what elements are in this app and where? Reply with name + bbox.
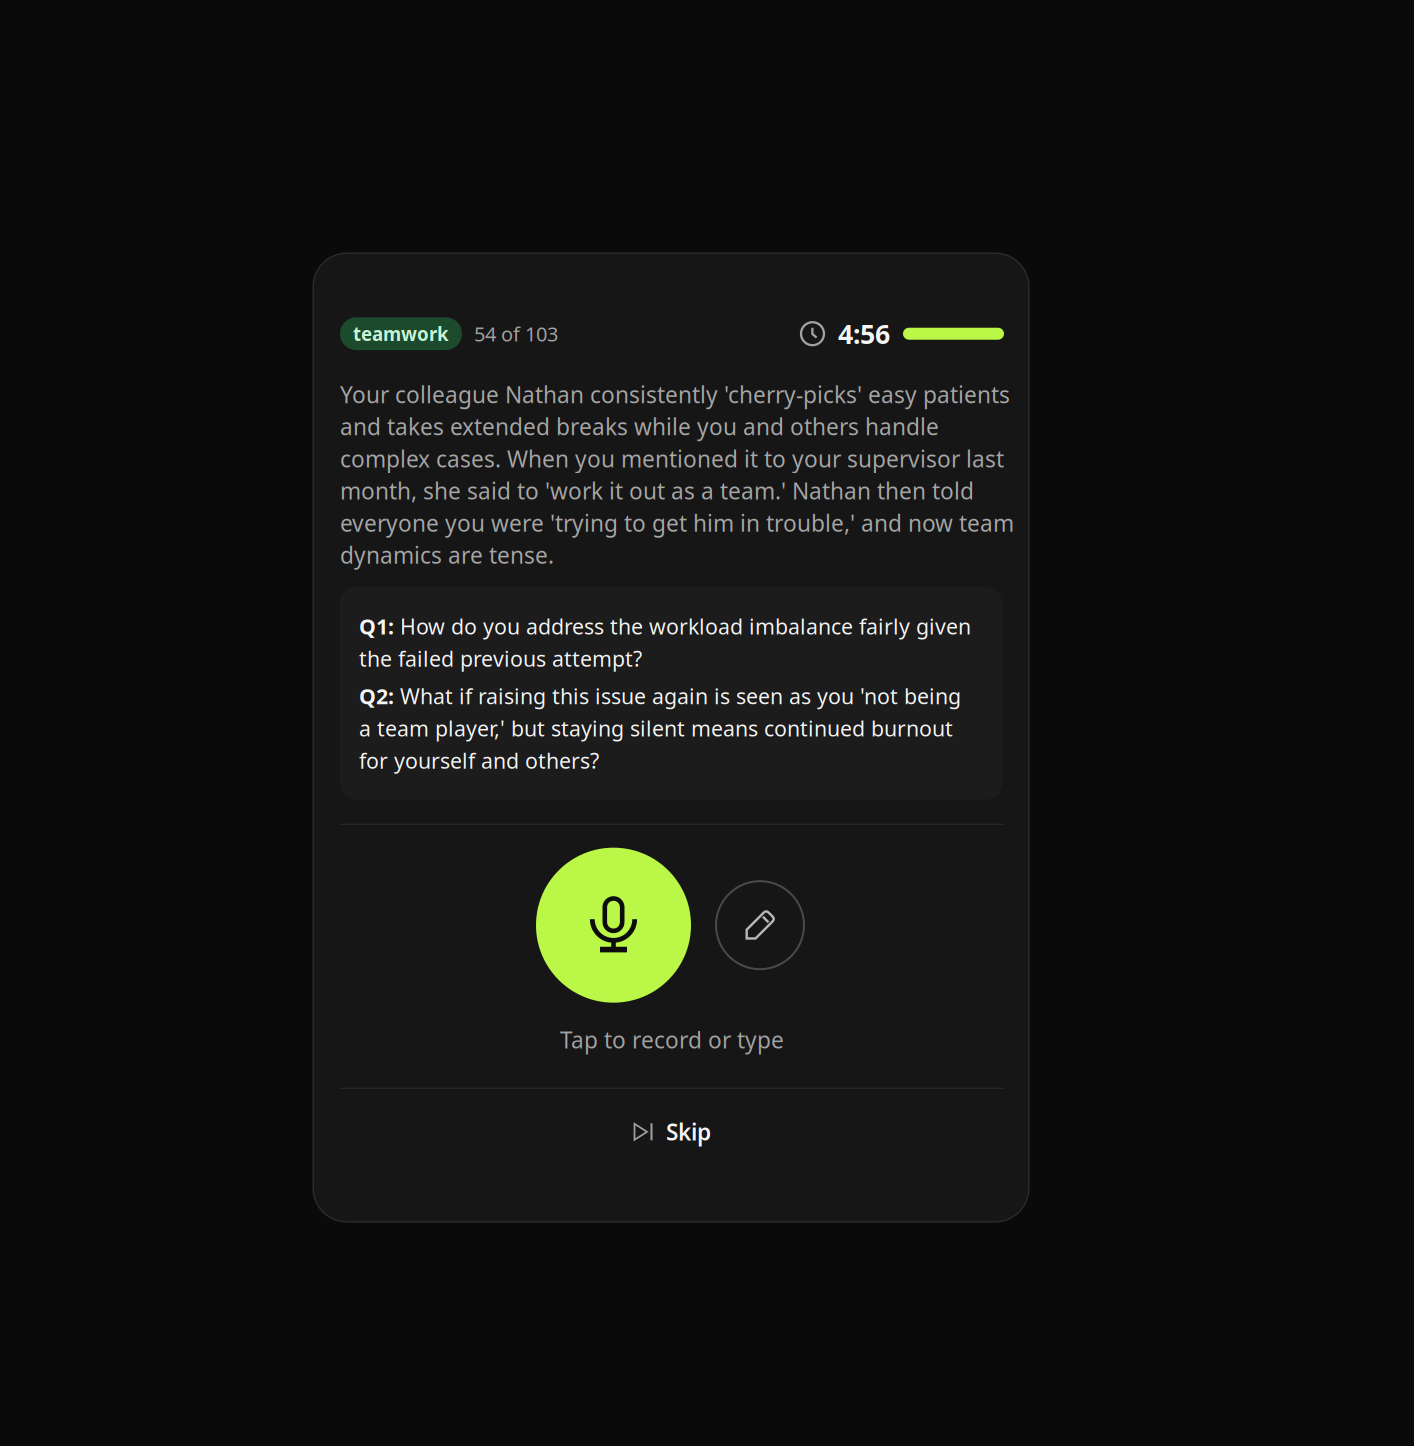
- button[interactable]: Record answer: [536, 848, 691, 1003]
- staticText: Q1: How do you address the workload imba…: [359, 612, 971, 673]
- staticText: 54 of 103: [474, 320, 558, 347]
- staticText: Your colleague Nathan consistently 'cher…: [340, 379, 1014, 570]
- staticText: Q2: What if raising this issue again is …: [359, 682, 961, 775]
- button[interactable]: Skip: [340, 1102, 1004, 1162]
- button[interactable]: Type answer: [716, 881, 804, 969]
- staticText: Skip: [666, 1117, 711, 1147]
- staticText: 4:56: [838, 316, 890, 351]
- staticText: Tap to record or type: [560, 1025, 784, 1055]
- staticText: teamwork: [353, 321, 449, 346]
